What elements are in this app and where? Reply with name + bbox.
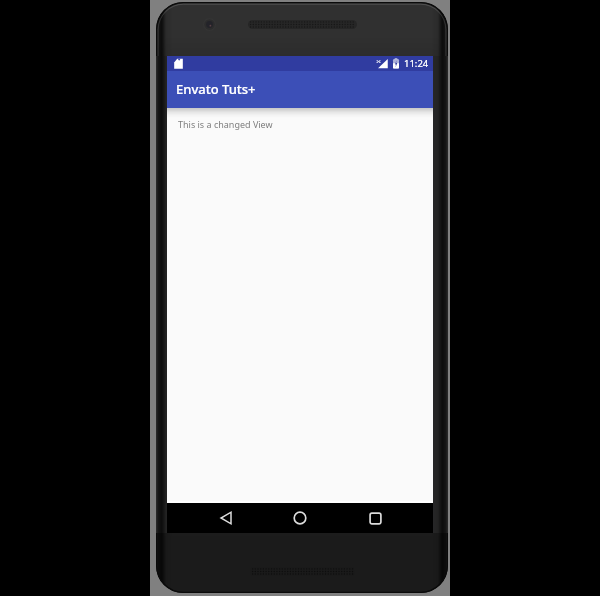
- staticText: 11:24: [404, 57, 429, 70]
- button[interactable]: Back: [210, 503, 242, 533]
- button[interactable]: Recents: [359, 503, 391, 533]
- button[interactable]: Envato Tuts+: [167, 71, 433, 108]
- staticText: Envato Tuts+: [176, 80, 256, 98]
- button[interactable]: Home: [284, 503, 316, 533]
- staticText: This is a changed View: [178, 118, 273, 130]
